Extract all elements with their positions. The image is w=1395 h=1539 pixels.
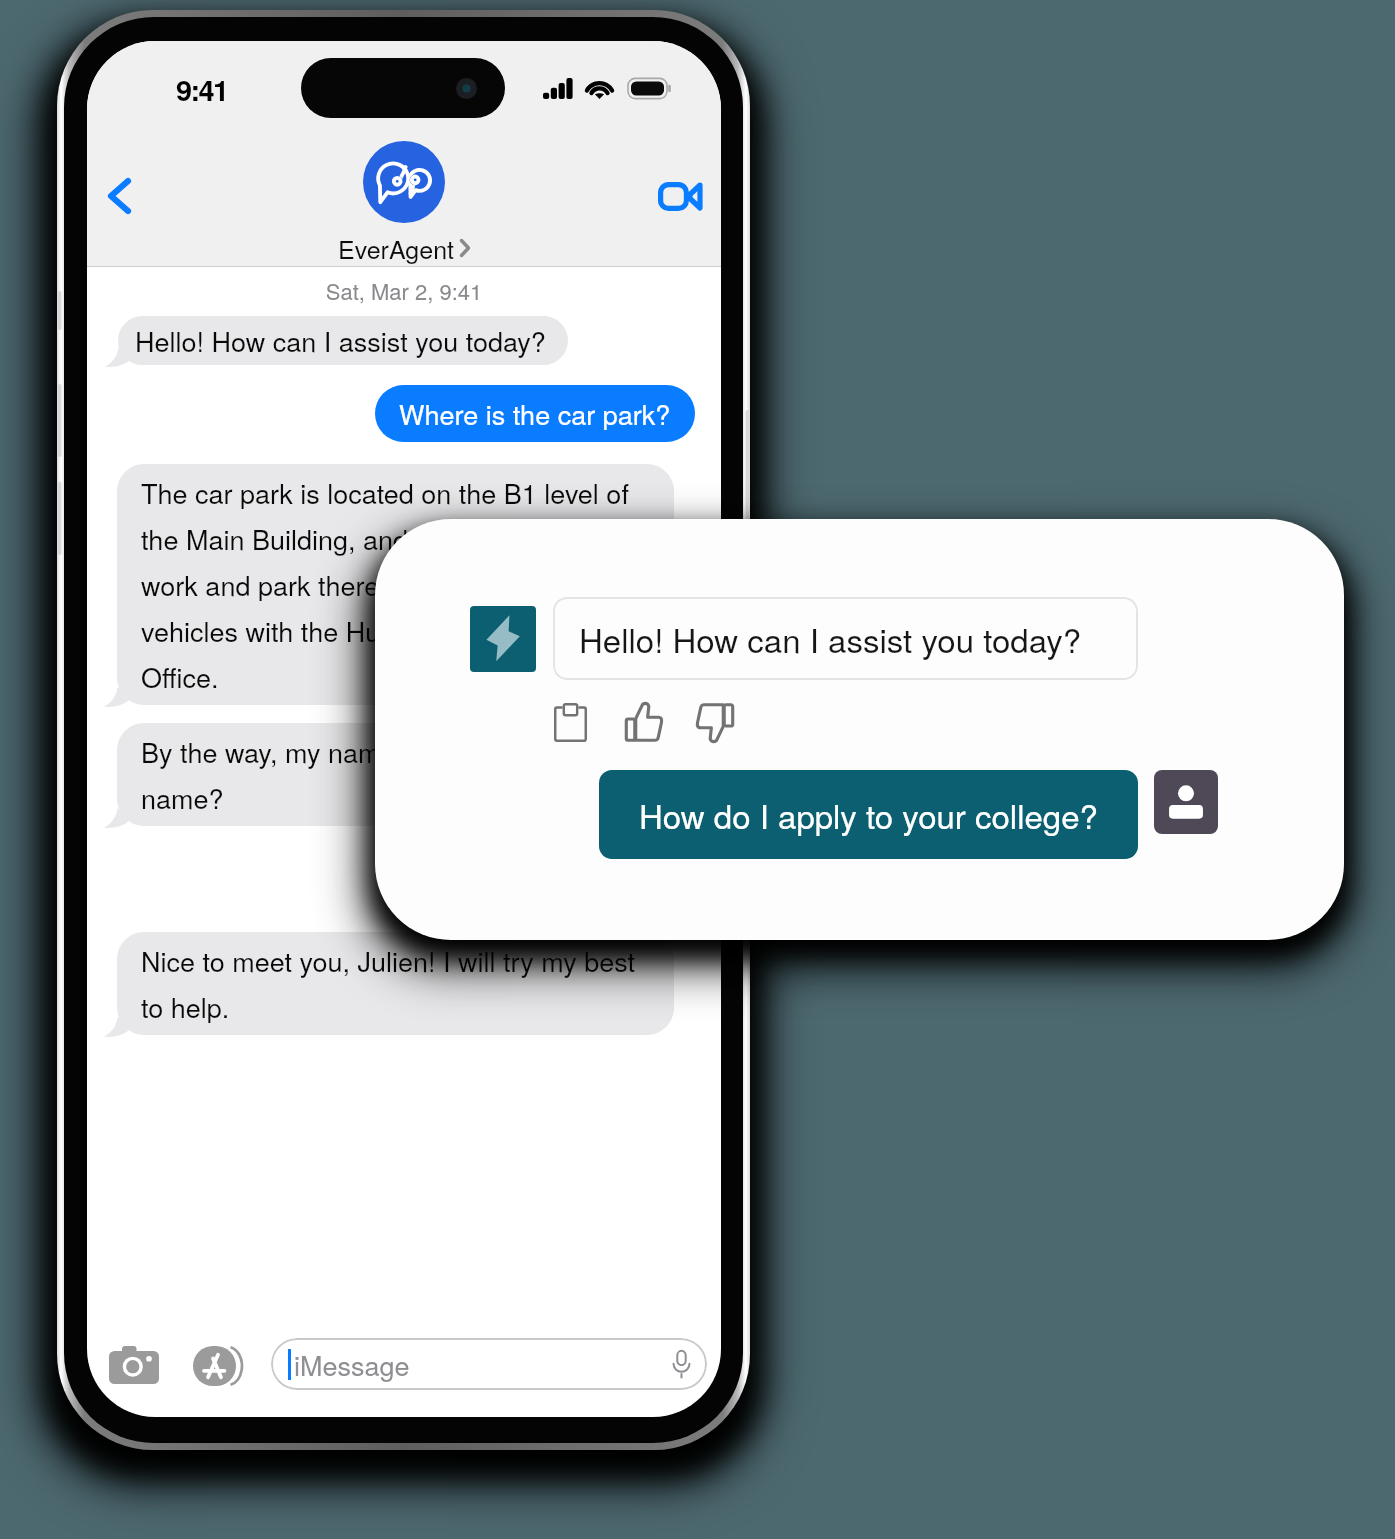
button[interactable]: Hello! How can I assist you today? <box>118 316 568 365</box>
button[interactable]: Nice to meet you, Julien! I will try my … <box>117 932 674 1035</box>
button[interactable]: iMessage <box>271 1338 707 1390</box>
staticText: How do I apply to your college? <box>639 791 1098 838</box>
staticText: Hello! How can I assist you today? <box>135 321 546 360</box>
button[interactable]: EverAgent <box>87 141 721 266</box>
button[interactable]: Hello! How can I assist you today? <box>553 597 1138 680</box>
staticText: iMessage <box>294 1345 410 1384</box>
button[interactable]: Back <box>96 166 144 226</box>
staticText: By the way, my name is Jan. What's your … <box>141 732 650 817</box>
button[interactable]: Where is the car park? <box>375 385 695 442</box>
button[interactable]: Copy <box>554 703 587 742</box>
button[interactable]: Apps <box>193 1346 243 1386</box>
staticText: 9:41 <box>176 68 228 110</box>
staticText: Nice to meet you, Julien! I will try my … <box>141 941 650 1026</box>
staticText: Sat, Mar 2, 9:41 <box>87 275 721 307</box>
button[interactable]: Thumbs down <box>697 703 734 742</box>
button[interactable]: Camera <box>109 1346 159 1384</box>
staticText: EverAgent <box>338 230 454 266</box>
button[interactable]: By the way, my name is Jan. What's your … <box>117 723 674 826</box>
button[interactable]: The car park is located on the B1 level … <box>117 464 674 705</box>
button[interactable]: How do I apply to your college? <box>599 770 1138 859</box>
button[interactable]: Thumbs up <box>625 703 662 742</box>
button[interactable]: FaceTime video call <box>648 172 710 220</box>
staticText: Where is the car park? <box>399 394 671 433</box>
staticText: Hello! How can I assist you today? <box>579 615 1082 662</box>
staticText: The car park is located on the B1 level … <box>141 473 650 696</box>
